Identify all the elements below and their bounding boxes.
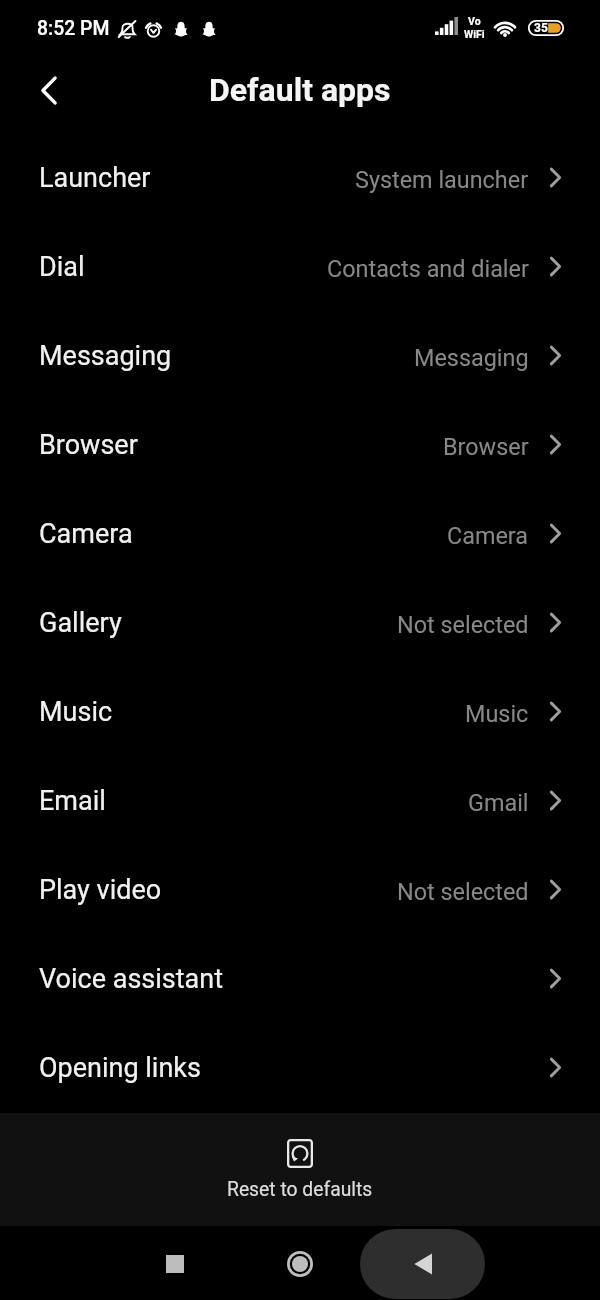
button[interactable]: Dial: [0, 222, 600, 311]
button[interactable]: Recent apps: [151, 1240, 199, 1288]
staticText: Not selected: [397, 611, 529, 638]
staticText: 35: [534, 21, 548, 35]
staticText: Default apps: [209, 71, 391, 109]
button[interactable]: Music: [0, 667, 600, 756]
staticText: Vo: [468, 15, 481, 27]
button[interactable]: Email: [0, 756, 600, 845]
button[interactable]: Camera: [0, 489, 600, 578]
staticText: Gmail: [468, 789, 529, 816]
button[interactable]: Browser: [0, 400, 600, 489]
button[interactable]: Play video: [0, 845, 600, 934]
staticText: Messaging: [414, 344, 529, 371]
staticText: Browser: [39, 429, 138, 461]
staticText: Opening links: [39, 1052, 201, 1084]
button[interactable]: Home: [276, 1240, 324, 1288]
staticText: Contacts and dialer: [327, 255, 529, 282]
staticText: 8:52 PM: [37, 17, 110, 40]
staticText: WiFi: [464, 28, 485, 40]
staticText: Music: [39, 696, 113, 728]
button[interactable]: Gallery: [0, 578, 600, 667]
staticText: Launcher: [39, 162, 151, 194]
button[interactable]: Back: [25, 66, 73, 114]
staticText: Reset to defaults: [227, 1178, 373, 1201]
staticText: Messaging: [39, 340, 172, 372]
staticText: Music: [465, 700, 529, 727]
staticText: Not selected: [397, 878, 529, 905]
button[interactable]: Back: [360, 1229, 485, 1299]
button[interactable]: Launcher: [0, 133, 600, 222]
staticText: Camera: [447, 522, 529, 549]
button[interactable]: Messaging: [0, 311, 600, 400]
staticText: Camera: [39, 518, 133, 550]
staticText: Browser: [443, 433, 529, 460]
button[interactable]: Voice assistant: [0, 934, 600, 1023]
button[interactable]: Reset to defaults: [0, 1113, 600, 1226]
staticText: Voice assistant: [39, 963, 224, 995]
staticText: Play video: [39, 874, 162, 906]
staticText: Gallery: [39, 607, 122, 639]
button[interactable]: Opening links: [0, 1023, 600, 1112]
staticText: Email: [39, 785, 106, 817]
staticText: Dial: [39, 251, 85, 283]
staticText: System launcher: [355, 166, 529, 193]
